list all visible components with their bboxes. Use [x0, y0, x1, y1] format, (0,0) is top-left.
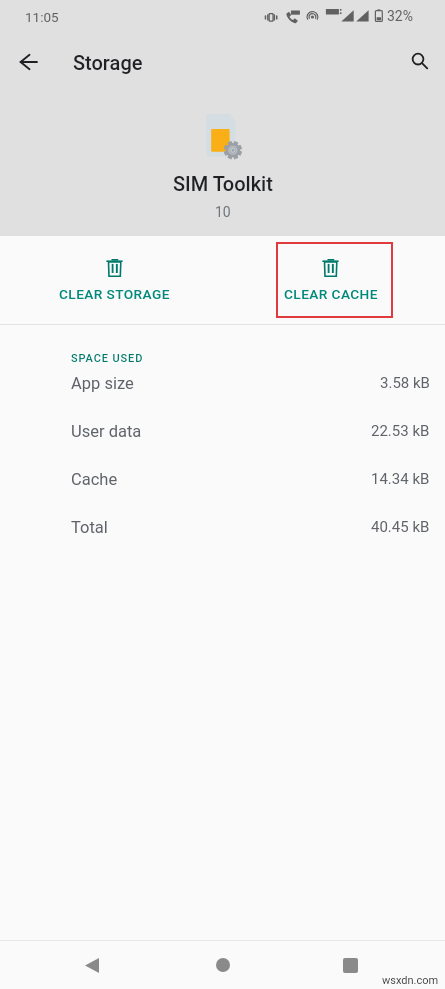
staticText: 14.34 kB: [371, 470, 430, 488]
staticText: 32%: [387, 8, 413, 24]
staticText: CLEAR STORAGE: [59, 286, 170, 302]
staticText: Cache: [71, 470, 118, 489]
staticText: CLEAR CACHE: [284, 286, 378, 302]
staticText: User data: [71, 422, 142, 441]
button[interactable]: CLEAR STORAGE: [0, 236, 222, 324]
button[interactable]: CLEAR CACHE: [222, 236, 445, 324]
staticText: wsxdn.com: [382, 974, 439, 987]
staticText: 22.53 kB: [371, 422, 430, 440]
button[interactable]: App size: [0, 359, 445, 407]
button[interactable]: Back: [69, 942, 115, 988]
staticText: Storage: [73, 51, 143, 74]
staticText: 3.58 kB: [380, 374, 430, 392]
button[interactable]: Search: [396, 40, 444, 84]
staticText: SPACE USED: [71, 352, 144, 365]
button[interactable]: Total: [0, 503, 445, 551]
staticText: Total: [71, 518, 108, 537]
button[interactable]: User data: [0, 407, 445, 455]
staticText: 40.45 kB: [371, 518, 430, 536]
button[interactable]: Home: [200, 942, 246, 988]
button[interactable]: Cache: [0, 455, 445, 503]
button[interactable]: Back: [4, 40, 52, 84]
staticText: App size: [71, 374, 134, 393]
button[interactable]: Recent apps: [327, 942, 373, 988]
staticText: 11:05: [25, 9, 59, 25]
staticText: SIM Toolkit: [173, 172, 273, 195]
staticText: 10: [215, 204, 231, 220]
